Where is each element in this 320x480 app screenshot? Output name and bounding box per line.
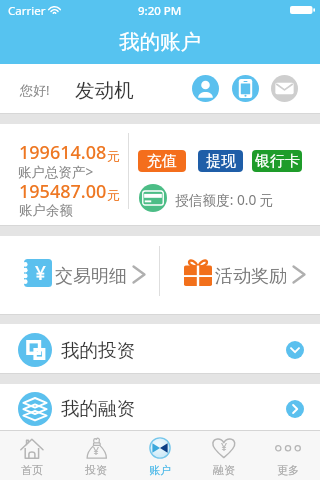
staticText: ¥: [221, 440, 228, 454]
staticText: 账户总资产>: [18, 163, 94, 181]
button[interactable]: 授信额度: 0.0 元: [135, 180, 300, 216]
staticText: 更多: [277, 463, 299, 477]
staticText: 199614.08: [19, 140, 107, 165]
button[interactable]: ¥: [64, 430, 128, 480]
staticText: 元: [107, 187, 120, 203]
button[interactable]: ¥: [8, 250, 153, 300]
other: Expand: [286, 341, 304, 359]
other: Open: [286, 400, 304, 418]
button[interactable]: ¥: [192, 430, 256, 480]
button[interactable]: 更多: [256, 430, 320, 480]
button[interactable]: Mobile: [232, 75, 259, 102]
staticText: 195487.00: [19, 179, 107, 204]
staticText: 账户: [149, 463, 171, 477]
button[interactable]: 首页: [0, 430, 64, 480]
staticText: Carrier: [8, 3, 46, 19]
button[interactable]: 账户: [128, 430, 192, 480]
staticText: 充值: [147, 152, 177, 171]
staticText: ¥: [93, 444, 100, 458]
staticText: 9:20 PM: [138, 3, 182, 19]
staticText: 我的投资: [61, 339, 135, 362]
button[interactable]: 银行卡: [252, 150, 302, 172]
button[interactable]: 199614.08: [4, 134, 126, 174]
staticText: ¥: [35, 260, 46, 286]
staticText: 银行卡: [255, 152, 300, 171]
button[interactable]: 我的投资: [0, 324, 320, 373]
staticText: 授信额度: 0.0 元: [175, 190, 274, 209]
button[interactable]: 活动奖励: [168, 250, 313, 300]
button[interactable]: 我的融资: [0, 384, 320, 430]
button[interactable]: 充值: [138, 150, 186, 172]
staticText: 我的融资: [61, 397, 135, 420]
staticText: 融资: [213, 463, 235, 477]
button[interactable]: Profile: [192, 75, 219, 102]
button[interactable]: 提现: [198, 150, 243, 172]
button[interactable]: 195487.00: [4, 174, 126, 219]
staticText: 发动机: [75, 78, 134, 103]
staticText: 投资: [85, 463, 107, 477]
staticText: 账户余额: [19, 202, 73, 219]
staticText: 您好!: [20, 81, 50, 99]
staticText: 我的账户: [119, 29, 201, 55]
button[interactable]: Messages: [271, 75, 298, 102]
staticText: 提现: [206, 152, 236, 171]
staticText: 活动奖励: [215, 265, 287, 288]
staticText: 交易明细: [55, 265, 127, 288]
staticText: 首页: [21, 463, 43, 477]
staticText: 元: [107, 148, 120, 164]
